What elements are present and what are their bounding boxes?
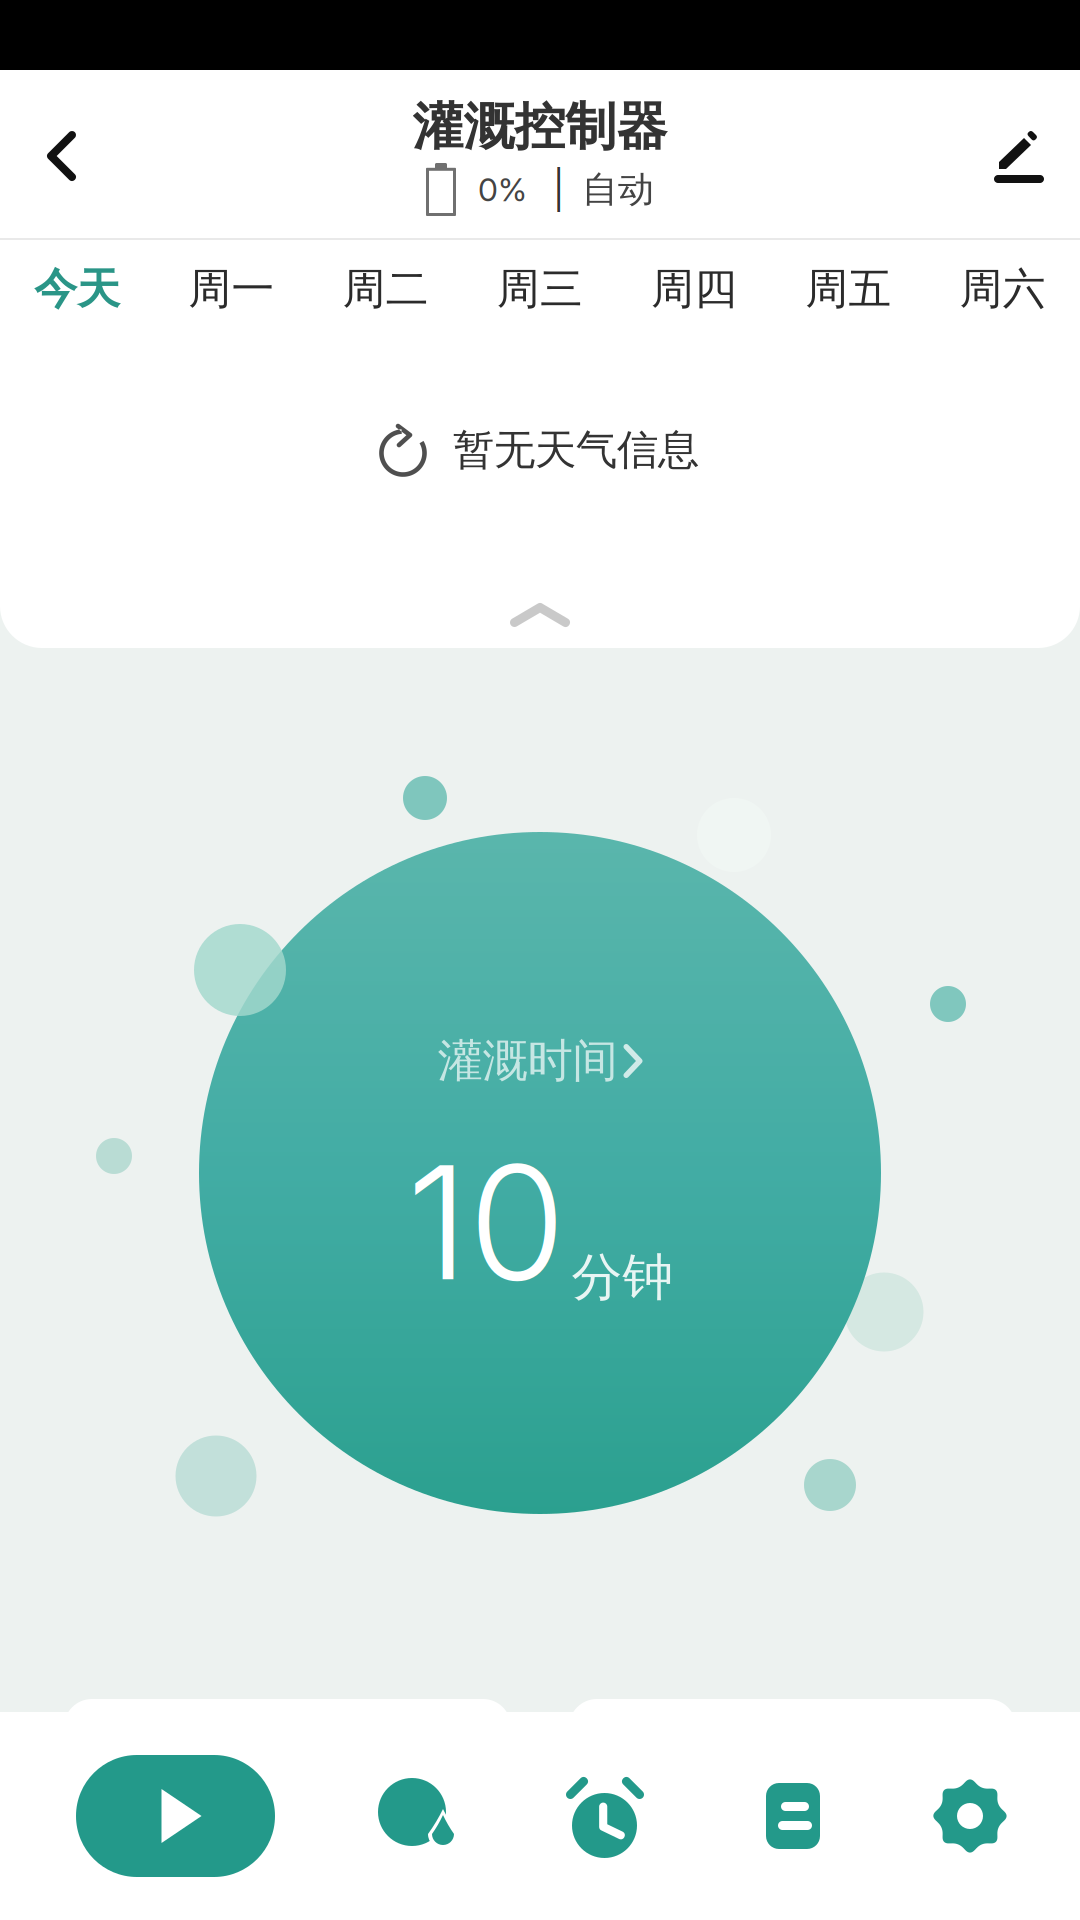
staticText: 周一 — [188, 262, 274, 316]
staticText: 周三 — [497, 262, 583, 316]
staticText: 周二 — [343, 262, 429, 316]
staticText: 周四 — [651, 262, 737, 316]
staticText: 周五 — [806, 262, 892, 316]
button[interactable]: 湿度 — [378, 1776, 462, 1860]
button[interactable]: 定时 — [563, 1777, 647, 1861]
staticText: 灌溉控制器 — [412, 95, 667, 159]
staticText: 灌溉时间 — [437, 1032, 617, 1089]
staticText: 0% — [478, 170, 527, 209]
staticText: 今天 — [34, 262, 120, 316]
button[interactable]: 返回 — [0, 70, 117, 238]
button[interactable]: 周五 — [771, 240, 926, 338]
staticText: 自动 — [582, 167, 654, 212]
button[interactable]: 周一 — [154, 240, 309, 338]
button[interactable]: 周二 — [309, 240, 463, 338]
button[interactable]: 开始灌溉 — [76, 1755, 275, 1877]
button[interactable]: 今天 — [0, 240, 154, 338]
button[interactable]: 收起 — [0, 580, 1080, 650]
button[interactable]: 记录 — [751, 1774, 835, 1858]
staticText: 10 — [406, 1127, 565, 1317]
staticText: 周六 — [960, 262, 1046, 316]
button[interactable]: 周三 — [463, 240, 617, 338]
staticText: 暂无天气信息 — [453, 424, 699, 476]
button[interactable]: 设置 — [928, 1774, 1012, 1858]
button[interactable]: 编辑 — [960, 70, 1080, 238]
staticText: 分钟 — [571, 1245, 673, 1309]
button[interactable]: 周六 — [926, 240, 1080, 338]
staticText: | — [553, 167, 564, 212]
button[interactable]: 周四 — [617, 240, 771, 338]
button[interactable]: 灌溉时间 — [199, 832, 881, 1514]
